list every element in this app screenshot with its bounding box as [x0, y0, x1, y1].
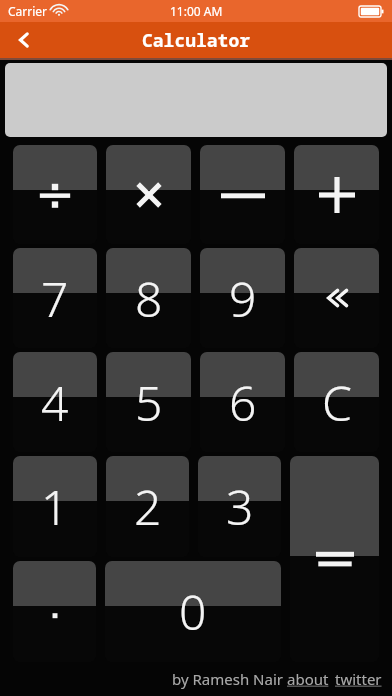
- button[interactable]: Multiply: [106, 145, 191, 244]
- button[interactable]: 3: [198, 456, 281, 557]
- staticText: 11:00 AM: [170, 3, 223, 19]
- button[interactable]: 7: [13, 248, 97, 348]
- button[interactable]: 2: [106, 456, 189, 557]
- staticText: about: [287, 669, 329, 689]
- staticText: by Ramesh Nair: [172, 669, 287, 689]
- button[interactable]: 9: [200, 248, 285, 348]
- staticText: 3: [226, 474, 254, 539]
- button[interactable]: Minus: [200, 145, 285, 244]
- staticText: 1: [41, 474, 69, 539]
- staticText: 9: [229, 266, 257, 331]
- button[interactable]: 8: [106, 248, 191, 348]
- button[interactable]: about: [287, 669, 329, 689]
- staticText: 7: [41, 266, 69, 331]
- button[interactable]: twitter: [335, 669, 382, 689]
- button[interactable]: 6: [200, 352, 285, 452]
- button[interactable]: 0: [105, 561, 281, 662]
- button[interactable]: Back: [0, 22, 48, 58]
- button[interactable]: C: [294, 352, 379, 452]
- staticText: 8: [135, 266, 163, 331]
- button[interactable]: Plus: [294, 145, 379, 244]
- button[interactable]: 4: [13, 352, 97, 452]
- button[interactable]: Divide: [13, 145, 97, 244]
- staticText: 5: [135, 370, 163, 435]
- button[interactable]: Equals: [290, 456, 379, 662]
- staticText: Calculator: [142, 28, 250, 53]
- button[interactable]: 5: [106, 352, 191, 452]
- staticText: C: [322, 370, 352, 435]
- button[interactable]: Backspace: [294, 248, 379, 348]
- staticText: 6: [229, 370, 257, 435]
- staticText: 0: [179, 579, 207, 644]
- staticText: 4: [41, 370, 69, 435]
- staticText: Carrier: [8, 3, 48, 19]
- button[interactable]: 1: [13, 456, 97, 557]
- staticText: 2: [134, 474, 162, 539]
- button[interactable]: Decimal point: [13, 561, 96, 662]
- staticText: twitter: [335, 669, 382, 689]
